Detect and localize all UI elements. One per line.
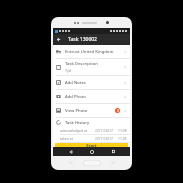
staticText: taken at (60, 136, 95, 141)
button[interactable]: Entrust United Kingdom (53, 45, 130, 59)
staticText: Task Description (65, 61, 98, 67)
button[interactable]: Home (83, 160, 101, 166)
staticText: Entrust United Kingdom (65, 49, 114, 55)
staticText: 22/11/2017 (95, 136, 114, 141)
staticText: Start (86, 143, 97, 147)
staticText: 22/11/2017 (95, 128, 114, 133)
staticText: 3 (117, 109, 119, 113)
button[interactable]: Task History (53, 118, 130, 143)
staticText: Tyd (65, 68, 71, 73)
button[interactable]: Task Description (53, 59, 130, 76)
staticText: Task History (65, 120, 90, 126)
staticText: acknowledged at (60, 128, 95, 133)
staticText: Task 130002 (68, 36, 97, 43)
staticText: 11:08 (118, 128, 127, 133)
button[interactable]: Back (66, 147, 75, 156)
button[interactable]: Start (55, 143, 128, 147)
button[interactable]: Recent apps (109, 147, 118, 156)
staticText: Add Notes (65, 80, 86, 86)
staticText: View Photo (65, 108, 88, 114)
staticText: Add Photo (65, 94, 86, 100)
button[interactable]: View Photo (53, 104, 130, 118)
button[interactable]: Home (87, 147, 96, 156)
button[interactable]: Back (53, 34, 64, 45)
button[interactable]: Add Photo (53, 90, 130, 104)
staticText: 11:05 (118, 136, 127, 141)
button[interactable]: Add Notes (53, 76, 130, 90)
